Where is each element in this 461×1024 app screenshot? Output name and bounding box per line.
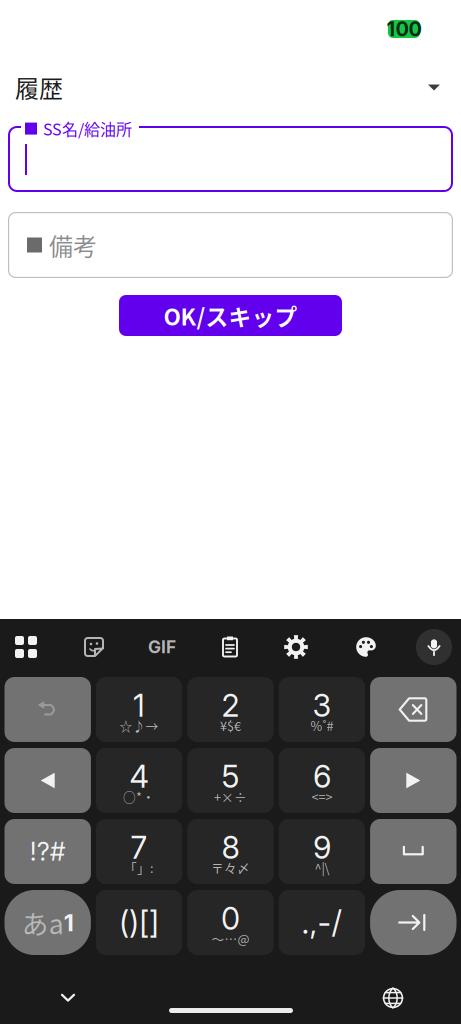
staticText: SS名/給油所	[43, 117, 132, 140]
staticText: 備考	[49, 228, 97, 262]
staticText: 1	[133, 687, 145, 724]
staticText: 〜…@	[211, 929, 249, 948]
staticText: あa	[22, 903, 64, 942]
button[interactable]: Apps	[0, 621, 52, 673]
staticText: GIF	[148, 636, 176, 657]
staticText: ()[]	[119, 904, 159, 941]
staticText: ☆♪→	[120, 716, 159, 735]
button[interactable]: 履歴	[0, 38, 461, 126]
button[interactable]: Voice input	[408, 621, 460, 673]
staticText: 1	[64, 908, 74, 937]
button[interactable]: 2	[187, 677, 274, 742]
button[interactable]: 8	[187, 819, 274, 884]
button[interactable]: 7	[96, 819, 182, 884]
button[interactable]: 1	[96, 677, 182, 742]
button[interactable]: Space	[370, 819, 456, 884]
staticText: 8	[221, 829, 239, 866]
button[interactable]: Stickers	[68, 621, 120, 673]
staticText: ^|\	[314, 858, 329, 877]
button[interactable]: 4	[96, 748, 182, 813]
staticText: 4	[130, 758, 149, 795]
button[interactable]: Undo	[4, 677, 91, 742]
button[interactable]: Symbols	[4, 819, 91, 884]
staticText: OK/スキップ	[163, 299, 297, 332]
button[interactable]: Move left	[4, 748, 91, 813]
button[interactable]: 0	[187, 890, 274, 955]
button[interactable]: .,-/	[279, 890, 365, 955]
staticText: 100	[386, 17, 421, 41]
button[interactable]: Move right	[370, 748, 456, 813]
staticText: 9	[313, 829, 331, 866]
button[interactable]: 備考	[0, 212, 461, 278]
staticText: +×÷	[214, 787, 247, 806]
staticText: .,-/	[301, 904, 342, 941]
staticText: 〒々〆	[211, 858, 250, 877]
button[interactable]: 6	[279, 748, 365, 813]
staticText: ¥$€	[220, 716, 241, 735]
staticText: 0	[221, 900, 240, 937]
staticText: %˚#	[310, 716, 333, 735]
button[interactable]: OK/スキップ	[119, 295, 342, 336]
button[interactable]: Backspace	[370, 677, 456, 742]
button[interactable]: GIF	[136, 621, 188, 673]
button[interactable]: Hide keyboard	[46, 982, 90, 1012]
button[interactable]: Themes	[340, 621, 392, 673]
staticText: 2	[221, 687, 239, 724]
button[interactable]: ()[]	[96, 890, 182, 955]
button[interactable]: 9	[279, 819, 365, 884]
staticText: 5	[221, 758, 239, 795]
staticText: 「」:	[124, 858, 154, 877]
button[interactable]: Clipboard	[204, 621, 256, 673]
button[interactable]: Settings	[270, 621, 322, 673]
staticText: <=>	[311, 787, 332, 806]
button[interactable]: Enter	[370, 890, 456, 955]
staticText: 3	[312, 687, 331, 724]
staticText: ○*・	[123, 787, 155, 806]
staticText: !?#	[30, 836, 66, 867]
button[interactable]: Change language	[378, 983, 408, 1013]
staticText: 7	[131, 829, 148, 866]
button[interactable]: Switch input mode	[4, 890, 91, 955]
button[interactable]: 3	[279, 677, 365, 742]
staticText: 6	[313, 758, 331, 795]
button[interactable]: 5	[187, 748, 274, 813]
staticText: 履歴	[15, 70, 63, 104]
